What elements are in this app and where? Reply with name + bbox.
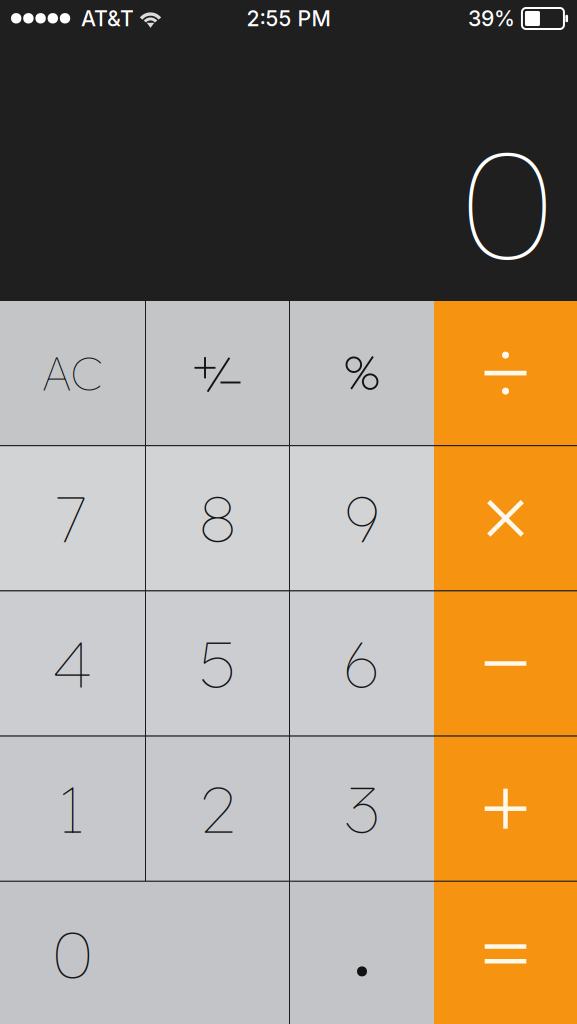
button[interactable]: 3 [290, 737, 434, 881]
button[interactable]: 5 [146, 591, 289, 736]
button[interactable]: Plus minus [146, 301, 289, 445]
button[interactable]: 4 [0, 591, 145, 736]
staticText: 39% [468, 6, 515, 31]
staticText: 3 [345, 769, 379, 849]
staticText: 0 [53, 914, 93, 994]
staticText: 8 [199, 478, 236, 558]
staticText: 0 [461, 110, 554, 296]
staticText: 6 [342, 623, 381, 703]
button[interactable]: 6 [290, 591, 434, 736]
staticText: 2:55 PM [246, 6, 330, 31]
button[interactable]: 2 [146, 737, 289, 881]
button[interactable]: 1 [0, 737, 145, 881]
staticText: 5 [199, 623, 235, 703]
button[interactable]: 7 [0, 446, 145, 590]
staticText: AT&T [81, 6, 134, 31]
button[interactable]: Percent [290, 301, 434, 445]
staticText: 7 [57, 478, 87, 558]
staticText: 9 [344, 478, 379, 558]
staticText: 4 [52, 623, 92, 703]
button[interactable]: 8 [146, 446, 289, 590]
button[interactable]: 0 [0, 882, 289, 1024]
button[interactable]: Add [434, 737, 577, 881]
button[interactable]: 9 [290, 446, 434, 590]
button[interactable]: All clear [0, 301, 145, 445]
staticText: 2 [200, 769, 235, 849]
button[interactable]: Divide [434, 301, 577, 445]
button[interactable]: Decimal point [290, 882, 434, 1024]
staticText: 1 [60, 769, 84, 849]
button[interactable]: Equals [434, 882, 577, 1024]
button[interactable]: Subtract [434, 591, 577, 736]
button[interactable]: Multiply [434, 446, 577, 590]
staticText: AC [42, 344, 102, 402]
